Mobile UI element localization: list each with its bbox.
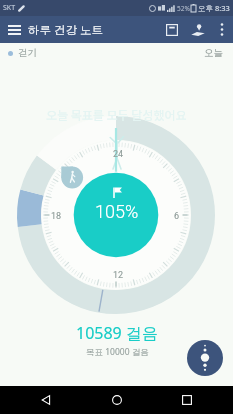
button[interactable]: Recent apps (162, 386, 212, 414)
button[interactable]: Map (185, 16, 211, 43)
staticText: 목표 10000 걸음 (86, 346, 149, 358)
staticText: 오늘 (204, 47, 223, 59)
staticText: 6 (174, 211, 180, 222)
staticText: 걷기 (18, 47, 37, 59)
staticText: 52% (177, 4, 190, 13)
button[interactable]: More options (211, 16, 233, 43)
staticText: 12 (113, 270, 124, 281)
button[interactable]: Add entry (187, 340, 223, 376)
button[interactable]: Home (92, 386, 142, 414)
staticText: 오후 8:33 (198, 3, 230, 13)
staticText: 105% (95, 201, 139, 222)
staticText: 하루 건강 노트 (28, 22, 103, 38)
staticText: 오늘 목표를 모두 달성했어요 (46, 106, 187, 123)
staticText: SKT (3, 3, 16, 13)
button[interactable]: 걷기 (8, 47, 37, 59)
button[interactable]: Back (21, 386, 71, 414)
staticText: 10589 걸음 (76, 322, 158, 344)
button[interactable]: 오늘 (204, 47, 223, 59)
staticText: 24 (113, 149, 124, 160)
button[interactable]: Calendar (159, 16, 185, 43)
staticText: 18 (51, 211, 62, 222)
button[interactable]: Menu (0, 16, 28, 43)
